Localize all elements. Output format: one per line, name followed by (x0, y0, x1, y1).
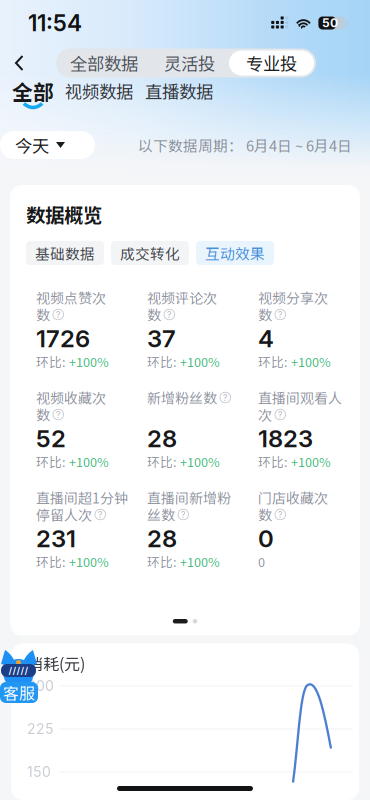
staticText: 数据概览 (26, 200, 102, 228)
button[interactable]: Back (3, 46, 36, 80)
staticText: 数 (36, 304, 50, 325)
staticText: 150 (27, 763, 51, 780)
button[interactable]: 互动效果 (196, 241, 274, 265)
staticText: 今天 (15, 132, 49, 158)
staticText: 环比: (258, 452, 291, 471)
staticText: 0 (258, 552, 265, 571)
staticText: 次 (258, 404, 272, 425)
button[interactable]: 成交转化 (111, 241, 189, 265)
staticText: 28 (147, 424, 177, 453)
staticText: 50 (322, 16, 338, 30)
button[interactable]: 全部数据 (58, 50, 150, 75)
staticText: 互动效果 (205, 242, 265, 264)
staticText: ? (181, 509, 186, 520)
staticText: ? (278, 409, 283, 420)
staticText: 视频数据 (65, 78, 133, 104)
staticText: +100% (69, 352, 109, 371)
staticText: ? (223, 392, 228, 403)
staticText: 数 (258, 304, 272, 325)
staticText: 37 (147, 324, 176, 353)
staticText: 门店收藏次 (258, 487, 328, 508)
staticText: ? (278, 309, 283, 320)
staticText: 视频收藏次 (36, 387, 106, 408)
button[interactable]: 专业投 (229, 50, 314, 75)
staticText: 环比: (36, 552, 69, 571)
staticText: 成交转化 (120, 242, 180, 264)
staticText: 直播间观看人 (258, 387, 342, 408)
staticText: 0 (258, 524, 274, 553)
staticText: ? (56, 309, 61, 320)
staticText: 4 (258, 324, 274, 353)
staticText: ? (167, 309, 172, 320)
staticText: 视频点赞次 (36, 287, 106, 308)
staticText: 环比: (258, 352, 291, 371)
button[interactable]: 今天 (0, 131, 95, 159)
staticText: +100% (291, 352, 331, 371)
staticText: +100% (69, 452, 109, 471)
staticText: 1823 (258, 424, 313, 453)
staticText: 1726 (36, 324, 90, 353)
staticText: 丝数 (147, 504, 175, 525)
staticText: 环比: (147, 452, 180, 471)
staticText: 231 (36, 524, 76, 553)
staticText: 28 (147, 524, 177, 553)
staticText: 全部 (12, 76, 54, 106)
button[interactable]: 全部 (7, 80, 59, 112)
staticText: 数 (36, 404, 50, 425)
staticText: 灵活投 (164, 50, 215, 76)
staticText: ///// (8, 665, 28, 676)
staticText: ? (98, 509, 103, 520)
button[interactable]: 视频数据 (59, 80, 139, 112)
staticText: 停留人次 (36, 504, 92, 525)
staticText: 数 (147, 304, 161, 325)
button[interactable]: 灵活投 (150, 50, 229, 75)
staticText: 数 (258, 504, 272, 525)
staticText: +100% (180, 352, 220, 371)
staticText: 环比: (36, 352, 69, 371)
staticText: 全部数据 (70, 50, 138, 76)
staticText: 基础数据 (35, 242, 95, 264)
staticText: +100% (69, 552, 109, 571)
staticText: ? (56, 409, 61, 420)
staticText: 直播间新增粉 (147, 487, 231, 508)
staticText: ? (278, 509, 283, 520)
staticText: +100% (180, 552, 220, 571)
staticText: 11:54 (28, 9, 82, 37)
button[interactable]: 直播数据 (139, 80, 219, 112)
staticText: 300 (27, 677, 54, 694)
staticText: 客服 (3, 681, 35, 704)
staticText: 直播间超1分钟 (36, 487, 128, 508)
staticText: +100% (180, 452, 220, 471)
staticText: 环比: (147, 552, 180, 571)
staticText: 专业投 (246, 50, 297, 76)
staticText: 52 (36, 424, 66, 453)
staticText: 视频分享次 (258, 287, 328, 308)
staticText: 视频评论次 (147, 287, 217, 308)
staticText: 新增粉丝数 (147, 387, 217, 408)
button[interactable]: 客服 (0, 649, 38, 703)
staticText: 环比: (147, 352, 180, 371)
staticText: 直播数据 (145, 78, 213, 104)
staticText: 以下数据周期： 6月4日 ~ 6月4日 (138, 134, 352, 156)
button[interactable]: 基础数据 (26, 241, 104, 265)
staticText: 消耗(元) (27, 651, 85, 675)
staticText: 225 (27, 720, 54, 737)
staticText: 环比: (36, 452, 69, 471)
staticText: +100% (291, 452, 331, 471)
